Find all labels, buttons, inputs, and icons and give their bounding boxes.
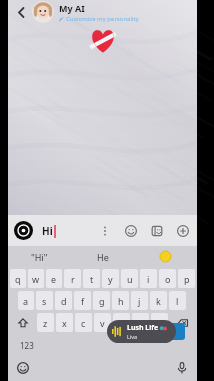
button[interactable]: g <box>93 291 110 310</box>
button[interactable]: n <box>132 313 149 332</box>
button[interactable]: More options <box>96 222 113 239</box>
staticText: v <box>100 317 105 329</box>
button[interactable]: Emoji keyboard <box>15 360 31 376</box>
staticText: t <box>90 273 94 285</box>
button[interactable]: y <box>102 269 119 288</box>
staticText: s <box>42 295 47 307</box>
button[interactable]: r <box>64 269 81 288</box>
button[interactable]: i <box>140 269 157 288</box>
button[interactable]: v <box>94 313 111 332</box>
staticText: "Hi" <box>31 251 48 263</box>
button[interactable]: Voice input <box>174 360 190 376</box>
button[interactable]: c <box>75 313 92 332</box>
button[interactable]: My AI avatar <box>32 1 54 23</box>
staticText: i <box>147 273 150 285</box>
button[interactable]: q <box>10 269 26 288</box>
button[interactable]: Emoji suggestion <box>134 246 197 267</box>
button[interactable]: He <box>71 246 134 267</box>
button[interactable]: w <box>28 269 44 288</box>
staticText: Liva <box>127 333 138 340</box>
staticText: k <box>156 295 161 307</box>
staticText: g <box>99 295 105 307</box>
staticText: r <box>71 273 75 285</box>
button[interactable]: o <box>159 269 176 288</box>
staticText: l <box>176 295 179 307</box>
button[interactable]: x <box>56 313 73 332</box>
button[interactable]: Back <box>12 3 30 21</box>
staticText: f <box>81 295 85 307</box>
staticText: q <box>15 273 21 285</box>
button[interactable]: z <box>37 313 54 332</box>
staticText: b <box>119 317 125 329</box>
button[interactable]: u <box>121 269 138 288</box>
button[interactable]: t <box>83 269 100 288</box>
button[interactable]: d <box>55 291 72 310</box>
staticText: m <box>155 317 164 329</box>
button[interactable]: 123 <box>9 335 44 355</box>
button[interactable]: h <box>112 291 129 310</box>
button[interactable]: m <box>151 313 168 332</box>
button[interactable]: b <box>113 313 130 332</box>
staticText: 123 <box>20 340 34 351</box>
staticText: d <box>61 295 67 307</box>
staticText: y <box>108 273 113 285</box>
button[interactable]: k <box>150 291 167 310</box>
staticText: p <box>184 273 190 285</box>
staticText: Hi <box>42 224 53 238</box>
staticText: My AI <box>59 2 85 14</box>
button[interactable]: Enter <box>162 335 196 355</box>
button[interactable]: Backspace <box>170 313 195 332</box>
staticText: o <box>165 273 171 285</box>
button[interactable]: l <box>169 291 186 310</box>
button[interactable]: e <box>46 269 62 288</box>
button[interactable]: My AI <box>59 2 191 23</box>
button[interactable]: Emoji <box>122 222 139 239</box>
button[interactable]: j <box>131 291 148 310</box>
staticText: z <box>43 317 48 329</box>
staticText: x <box>62 317 67 329</box>
button[interactable]: s <box>36 291 53 310</box>
button[interactable]: Camera <box>14 221 33 240</box>
button[interactable]: Lush Life <box>107 320 176 343</box>
staticText: n <box>138 317 144 329</box>
staticText: Customize my personality <box>66 15 139 23</box>
staticText: j <box>138 295 141 307</box>
button[interactable]: p <box>178 269 195 288</box>
button[interactable]: Attach <box>174 222 191 239</box>
button[interactable]: f <box>74 291 91 310</box>
staticText: w <box>32 273 40 285</box>
staticText: u <box>127 273 133 285</box>
button[interactable]: "Hi" <box>8 246 71 267</box>
staticText: c <box>81 317 86 329</box>
button[interactable]: a <box>18 291 34 310</box>
staticText: a <box>23 295 29 307</box>
staticText: He <box>97 251 109 263</box>
button[interactable]: Sticker <box>148 222 165 239</box>
button[interactable]: Shift <box>10 313 35 332</box>
staticText: e <box>51 273 57 285</box>
staticText: Lush Life <box>127 323 159 333</box>
button[interactable]: Space <box>44 335 162 355</box>
staticText: h <box>118 295 124 307</box>
